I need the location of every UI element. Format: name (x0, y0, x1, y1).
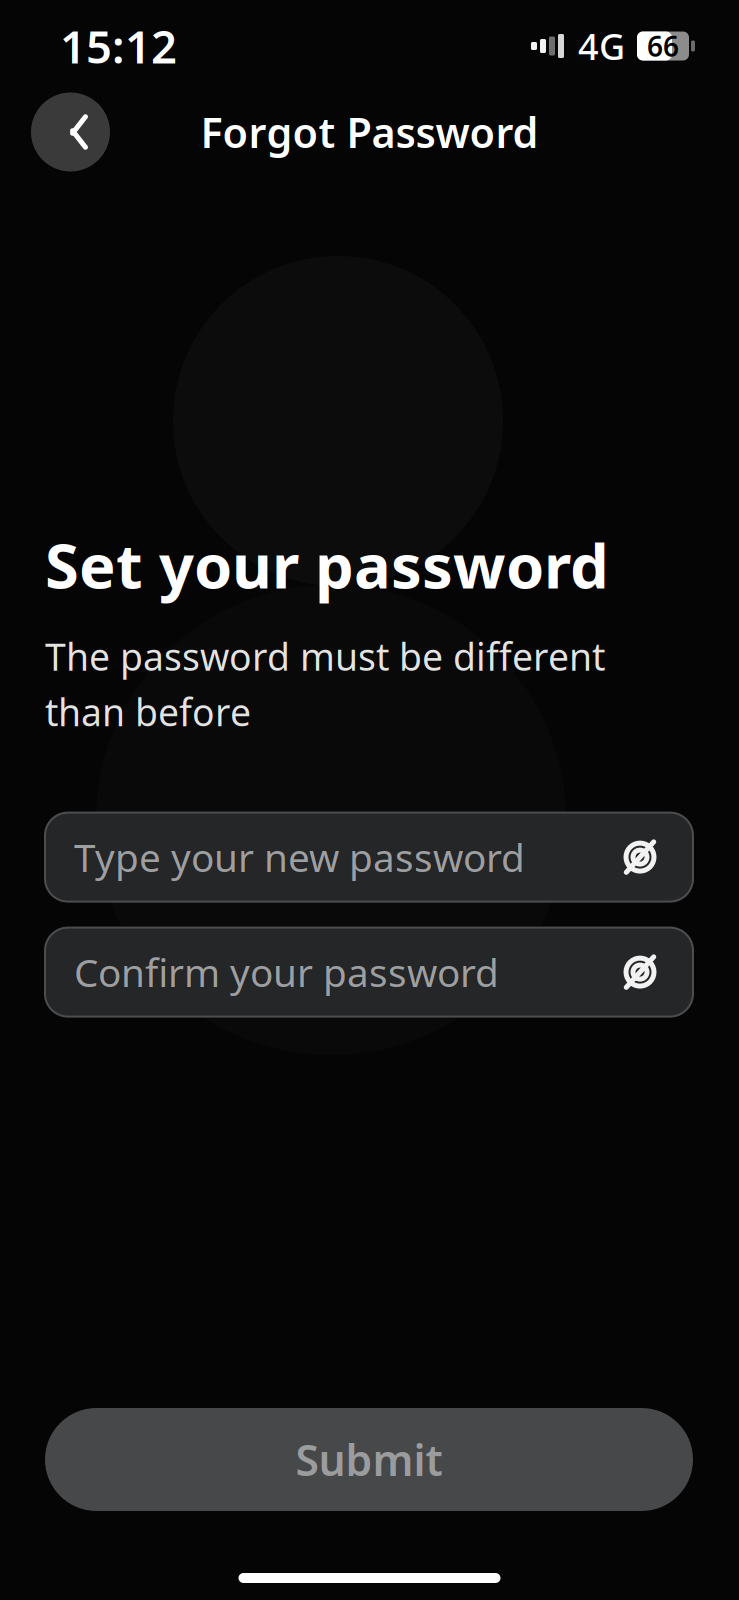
staticText: Confirm your password (74, 946, 499, 998)
button[interactable]: Show password (607, 829, 673, 885)
button[interactable]: Show password (607, 944, 673, 1000)
staticText: Submit (295, 1431, 442, 1488)
staticText: 4G (578, 22, 625, 70)
staticText: Forgot Password (200, 105, 538, 159)
button[interactable]: Back (31, 92, 110, 171)
staticText: Set your password (45, 524, 609, 605)
staticText: The password must be different (45, 631, 605, 681)
staticText: than before (45, 687, 251, 737)
staticText: 15:12 (60, 16, 177, 76)
staticText: 66 (647, 27, 679, 65)
staticText: Type your new password (74, 831, 525, 883)
button[interactable]: Submit (45, 1408, 693, 1511)
